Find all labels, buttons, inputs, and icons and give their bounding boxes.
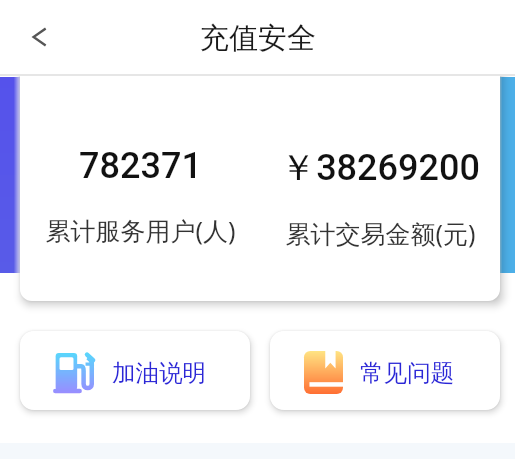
staticText: 充值安全 <box>200 20 316 57</box>
staticText: 常见问题 <box>360 358 454 388</box>
staticText: 累计服务用户(人) <box>45 213 236 247</box>
staticText: ￥38269200 <box>280 145 480 190</box>
staticText: 累计交易金额(元) <box>285 216 476 250</box>
staticText: 加油说明 <box>112 358 206 388</box>
button[interactable]: 常见问题 <box>270 331 500 410</box>
staticText: 782371 <box>79 145 202 187</box>
button[interactable]: 加油说明 <box>20 331 250 410</box>
button[interactable]: Back <box>0 0 78 76</box>
